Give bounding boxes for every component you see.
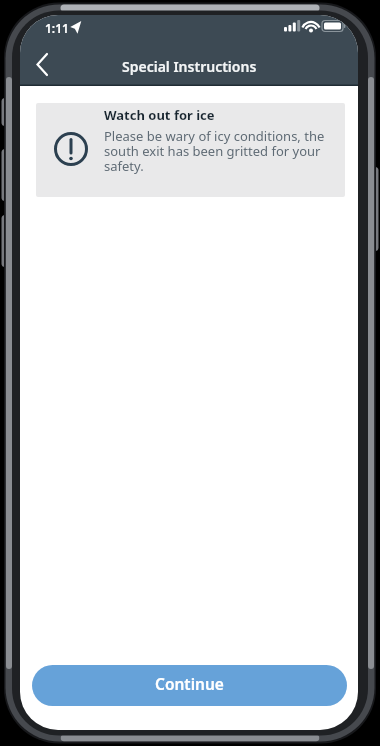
staticText: Special Instructions	[122, 57, 257, 76]
staticText: Please be wary of icy conditions, the so…	[104, 127, 325, 175]
staticText: Continue	[155, 673, 224, 694]
button[interactable]	[24, 47, 64, 86]
button[interactable]: Watch out for ice	[36, 103, 345, 197]
staticText: Watch out for ice	[104, 106, 215, 124]
staticText: 1:11	[45, 20, 69, 36]
button[interactable]: Continue	[32, 665, 347, 706]
